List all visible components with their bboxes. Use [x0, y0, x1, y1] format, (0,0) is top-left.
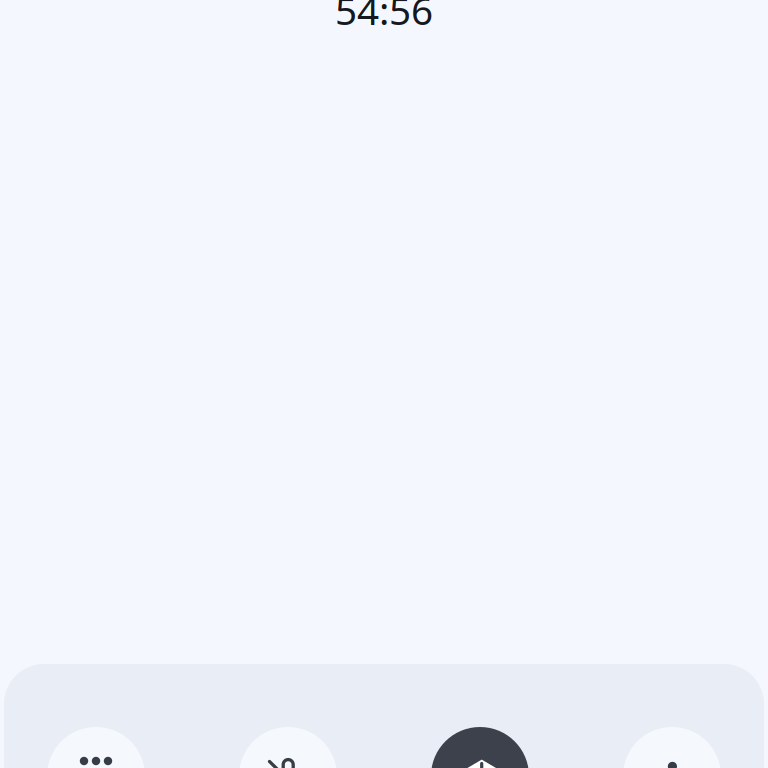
button[interactable]: More: [47, 727, 145, 768]
button[interactable]: Navigate: [431, 727, 529, 768]
staticText: 54:56: [335, 0, 433, 36]
button[interactable]: Mute: [239, 727, 337, 768]
button[interactable]: Participants: [623, 727, 721, 768]
